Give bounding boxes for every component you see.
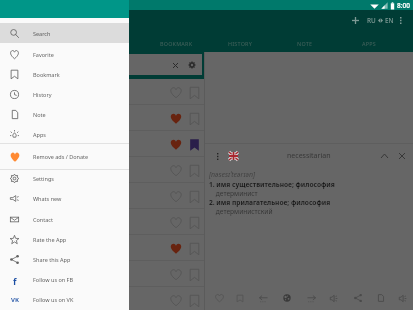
button[interactable]: VK (0, 289, 129, 309)
button[interactable]: BOOKMARK (144, 32, 208, 54)
button[interactable]: Favorite (167, 84, 184, 101)
staticText: 8:00 (397, 1, 410, 10)
button[interactable]: f (0, 269, 129, 289)
staticText: детерминистский (209, 207, 273, 216)
staticText: Share this App (33, 256, 71, 263)
button[interactable]: Bookmark (186, 266, 203, 283)
staticText: APPS (362, 40, 376, 47)
staticText: VK (11, 296, 19, 304)
button[interactable]: Previous (253, 288, 273, 308)
button[interactable]: Search (0, 23, 129, 43)
button[interactable]: Favorite (167, 240, 184, 257)
button[interactable]: Settings (0, 168, 129, 188)
button[interactable]: Favorite (167, 110, 184, 127)
staticText: Favorite (33, 51, 54, 58)
staticText: Rate the App (33, 236, 67, 243)
staticText: детерминист (209, 189, 258, 198)
button[interactable]: Source language (225, 148, 241, 164)
staticText: 1. имя существительное; философия (209, 180, 335, 189)
staticText: Follow us on VK (33, 296, 74, 303)
button[interactable]: Note (0, 104, 129, 124)
button[interactable]: Favorite (167, 188, 184, 205)
button[interactable]: Bookmark (186, 240, 203, 257)
button[interactable]: More options (393, 12, 409, 28)
staticText: Search (33, 30, 51, 37)
button[interactable]: Rate the App (0, 229, 129, 249)
staticText: Remove ads / Donate (33, 153, 89, 160)
staticText: necessitarian (287, 151, 331, 161)
staticText: Note (33, 111, 46, 118)
button[interactable]: Bookmark (186, 214, 203, 231)
button[interactable]: Whats new (0, 188, 129, 208)
button[interactable]: Bookmark (186, 110, 203, 127)
button[interactable]: Favorite (0, 183, 204, 209)
button[interactable]: Close (394, 148, 410, 164)
button[interactable]: Favorite (0, 79, 204, 105)
button[interactable]: APPS (337, 32, 401, 54)
button[interactable]: Share this App (0, 249, 129, 269)
button[interactable]: Translate (277, 288, 297, 308)
button[interactable]: Add (347, 12, 363, 28)
staticText: Apps (33, 131, 46, 138)
button[interactable]: Entry menu (209, 148, 225, 164)
staticText: [nəsesɪˈteərɪən] (209, 170, 256, 180)
button[interactable]: Favorite (0, 209, 204, 235)
staticText: EN (385, 16, 394, 25)
staticText: Settings (33, 175, 54, 182)
staticText: RU (367, 16, 376, 25)
button[interactable]: Bookmark (186, 162, 203, 179)
button[interactable]: Remove ads / Donate (0, 146, 129, 166)
button[interactable]: Apps (0, 124, 129, 144)
staticText: NOTE (297, 40, 313, 47)
button[interactable]: Favorite (167, 292, 184, 309)
button[interactable]: Collapse (376, 148, 392, 164)
button[interactable]: HISTORY (208, 32, 272, 54)
staticText: Whats new (33, 195, 62, 202)
button[interactable]: Search settings (184, 57, 200, 73)
button[interactable]: Clear search (167, 57, 183, 73)
button[interactable]: Favorite (167, 214, 184, 231)
button[interactable]: Bookmark (0, 64, 129, 84)
button[interactable]: Bookmark (186, 188, 203, 205)
button[interactable]: Copy (371, 288, 391, 308)
staticText: HISTORY (228, 40, 253, 47)
button[interactable]: Favorite (0, 105, 204, 131)
button[interactable]: History (0, 84, 129, 104)
button[interactable]: Favorite (167, 162, 184, 179)
button[interactable]: Favorite (0, 131, 204, 157)
staticText: f (13, 275, 17, 285)
button[interactable]: Favorite (0, 44, 129, 64)
button[interactable]: Favorite (0, 261, 204, 287)
staticText: BOOKMARK (160, 40, 193, 47)
button[interactable]: Favorite (0, 235, 204, 261)
button[interactable]: Bookmark (186, 84, 203, 101)
staticText: History (33, 91, 52, 98)
button[interactable]: Favorite (167, 136, 184, 153)
button[interactable]: Bookmark (186, 136, 203, 153)
button[interactable]: NOTE (273, 32, 337, 54)
staticText: Contact (33, 216, 53, 223)
button[interactable]: Bookmark (186, 292, 203, 309)
button[interactable]: Next (301, 288, 321, 308)
staticText: Bookmark (33, 71, 60, 78)
button[interactable]: Favorite (0, 287, 204, 310)
button[interactable]: Share (348, 288, 368, 308)
button[interactable]: Pronounce (324, 288, 344, 308)
staticText: Follow us on FB (33, 276, 74, 283)
staticText: 2. имя прилагательное; философия (209, 198, 331, 207)
button[interactable]: Pronounce alternative (393, 288, 413, 308)
button[interactable]: Favorite (0, 157, 204, 183)
button[interactable]: Contact (0, 209, 129, 229)
button[interactable]: Favorite (167, 266, 184, 283)
button[interactable]: RU (367, 13, 394, 28)
button[interactable]: Clear search (0, 54, 202, 75)
